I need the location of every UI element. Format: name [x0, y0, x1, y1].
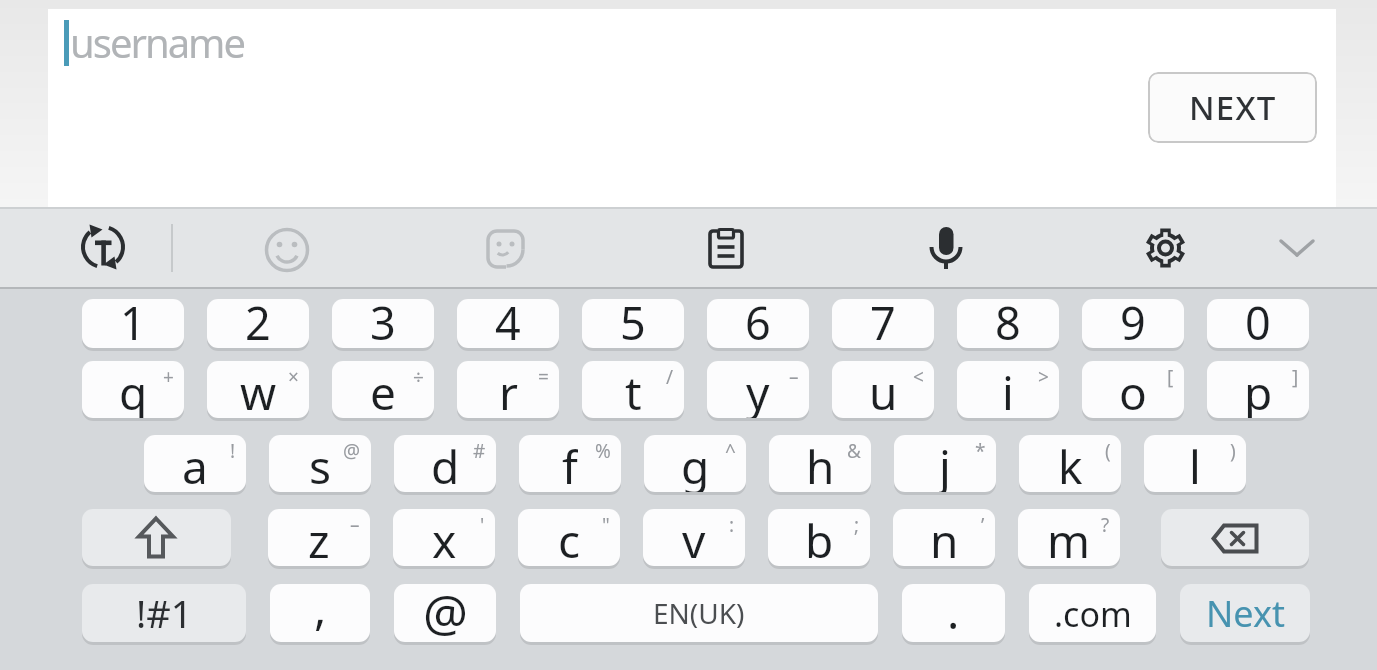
staticText: c: [558, 509, 581, 566]
button[interactable]: c: [518, 509, 620, 566]
button[interactable]: [475, 218, 535, 278]
button[interactable]: [257, 218, 317, 278]
button[interactable]: 9: [1082, 299, 1184, 348]
staticText: r: [499, 361, 518, 418]
staticText: b: [805, 509, 834, 566]
button[interactable]: ,: [270, 584, 370, 642]
button[interactable]: j: [894, 435, 996, 492]
button[interactable]: [696, 218, 756, 278]
button[interactable]: [1267, 218, 1327, 278]
button[interactable]: i: [957, 361, 1059, 418]
button[interactable]: v: [643, 509, 745, 566]
staticText: !#1: [136, 587, 193, 639]
staticText: username: [70, 15, 245, 69]
staticText: [: [1167, 364, 1174, 390]
staticText: t: [625, 361, 642, 418]
button[interactable]: 0: [1207, 299, 1309, 348]
button[interactable]: 3: [332, 299, 434, 348]
staticText: e: [370, 361, 396, 418]
button[interactable]: t: [582, 361, 684, 418]
staticText: ": [602, 512, 610, 538]
button[interactable]: 5: [582, 299, 684, 348]
button[interactable]: d: [394, 435, 496, 492]
button[interactable]: [1135, 218, 1195, 278]
staticText: l: [1189, 435, 1201, 492]
staticText: EN(UK): [653, 594, 745, 632]
staticText: q: [119, 361, 148, 418]
button[interactable]: z: [268, 509, 370, 566]
staticText: m: [1047, 509, 1091, 566]
button[interactable]: NEXT: [1148, 72, 1317, 143]
button[interactable]: q: [82, 361, 184, 418]
staticText: z: [308, 509, 330, 566]
button[interactable]: e: [332, 361, 434, 418]
button[interactable]: o: [1082, 361, 1184, 418]
button[interactable]: .com: [1029, 584, 1156, 642]
staticText: <: [913, 364, 924, 390]
button[interactable]: r: [457, 361, 559, 418]
staticText: 0: [1245, 299, 1271, 341]
staticText: f: [562, 435, 578, 492]
button[interactable]: [82, 509, 231, 566]
button[interactable]: p: [1207, 361, 1309, 418]
staticText: g: [681, 435, 710, 492]
staticText: o: [1119, 361, 1147, 418]
button[interactable]: 2: [207, 299, 309, 348]
button[interactable]: y: [707, 361, 809, 418]
button[interactable]: a: [144, 435, 246, 492]
staticText: w: [240, 361, 277, 418]
button[interactable]: w: [207, 361, 309, 418]
staticText: .: [947, 584, 960, 638]
staticText: ÷: [413, 364, 424, 390]
staticText: k: [1058, 435, 1083, 492]
staticText: u: [869, 361, 898, 418]
button[interactable]: x: [393, 509, 495, 566]
staticText: Next: [1206, 589, 1285, 638]
button[interactable]: b: [768, 509, 870, 566]
staticText: a: [182, 435, 208, 492]
staticText: .com: [1054, 591, 1132, 637]
button[interactable]: .: [902, 584, 1005, 642]
staticText: !: [230, 438, 236, 464]
button[interactable]: s: [269, 435, 371, 492]
staticText: 6: [745, 299, 771, 341]
button[interactable]: l: [1144, 435, 1246, 492]
button[interactable]: h: [769, 435, 871, 492]
button[interactable]: n: [893, 509, 995, 566]
staticText: :: [729, 512, 735, 538]
button[interactable]: g: [644, 435, 746, 492]
staticText: #: [473, 438, 486, 464]
button[interactable]: !#1: [82, 584, 246, 642]
button[interactable]: Next: [1180, 584, 1310, 642]
staticText: 1: [120, 299, 146, 341]
button[interactable]: u: [832, 361, 934, 418]
button[interactable]: k: [1019, 435, 1121, 492]
button[interactable]: [916, 218, 976, 278]
button[interactable]: m: [1018, 509, 1120, 566]
staticText: ’: [981, 512, 985, 538]
staticText: =: [538, 364, 549, 390]
button[interactable]: [1161, 509, 1309, 566]
staticText: n: [930, 509, 959, 566]
staticText: ^: [725, 438, 736, 464]
staticText: v: [682, 509, 706, 566]
button[interactable]: 7: [832, 299, 934, 348]
button[interactable]: 6: [707, 299, 809, 348]
staticText: h: [806, 435, 835, 492]
staticText: &: [847, 438, 861, 464]
button[interactable]: @: [394, 584, 496, 642]
button[interactable]: EN(UK): [520, 584, 878, 642]
button[interactable]: 8: [957, 299, 1059, 348]
button[interactable]: 1: [82, 299, 184, 348]
staticText: NEXT: [1189, 85, 1277, 130]
button[interactable]: [73, 218, 133, 278]
staticText: 2: [245, 299, 271, 341]
staticText: ×: [288, 364, 299, 390]
staticText: ;: [854, 512, 860, 538]
staticText: 4: [495, 299, 521, 341]
button[interactable]: f: [519, 435, 621, 492]
staticText: 7: [870, 299, 896, 341]
staticText: ]: [1292, 364, 1299, 390]
staticText: –: [350, 512, 360, 538]
button[interactable]: 4: [457, 299, 559, 348]
